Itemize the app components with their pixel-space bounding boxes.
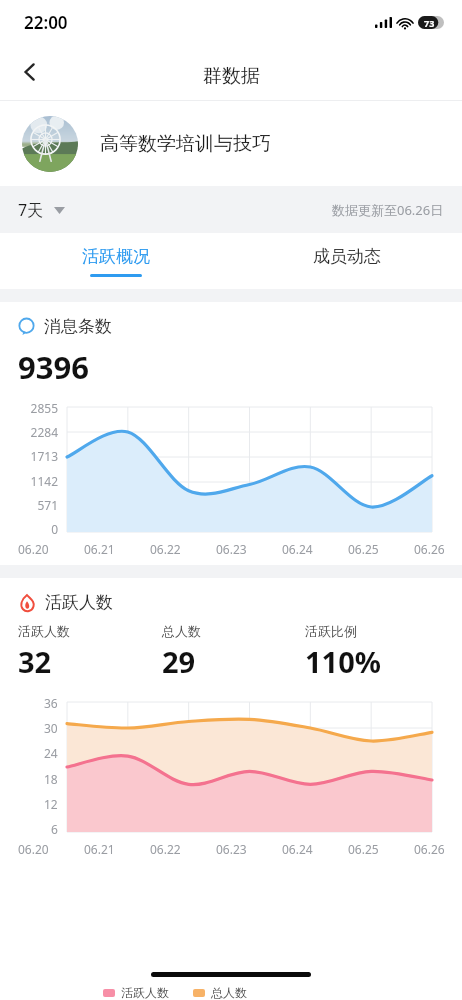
staticText: 1713 — [30, 448, 58, 464]
staticText: 0 — [51, 521, 58, 537]
staticText: 1142 — [30, 473, 58, 489]
staticText: 6 — [51, 821, 58, 837]
staticText: 群数据 — [203, 64, 260, 88]
staticText: 73 — [424, 17, 435, 29]
staticText: 36 — [44, 695, 58, 711]
staticText: 06.26 — [414, 841, 445, 857]
staticText: 06.21 — [84, 841, 115, 857]
staticText: 活跃人数 — [121, 985, 169, 1000]
staticText: 06.20 — [18, 841, 49, 857]
staticText: 7天 — [18, 199, 44, 221]
staticText: 06.22 — [150, 841, 181, 857]
staticText: 06.24 — [282, 541, 313, 557]
staticText: 成员动态 — [313, 246, 381, 267]
staticText: 06.21 — [84, 541, 115, 557]
staticText: 总人数 — [162, 623, 201, 639]
button[interactable]: 高等数学培训与技巧 — [0, 101, 462, 186]
staticText: 活跃人数 — [18, 623, 70, 639]
staticText: 06.24 — [282, 841, 313, 857]
staticText: 06.25 — [348, 841, 379, 857]
staticText: 18 — [44, 771, 58, 787]
staticText: 22:00 — [24, 11, 68, 34]
staticText: 24 — [44, 745, 58, 761]
button[interactable]: Back — [8, 50, 52, 94]
staticText: 高等数学培训与技巧 — [100, 132, 271, 156]
staticText: 571 — [37, 497, 58, 513]
button[interactable]: 活跃概况 — [0, 233, 231, 289]
staticText: 06.23 — [216, 841, 247, 857]
staticText: 06.22 — [150, 541, 181, 557]
staticText: 06.25 — [348, 541, 379, 557]
staticText: 2284 — [30, 424, 58, 440]
staticText: 110% — [305, 642, 381, 681]
staticText: 数据更新至06.26日 — [332, 201, 444, 219]
staticText: 活跃人数 — [45, 592, 113, 613]
staticText: 活跃概况 — [82, 246, 150, 267]
staticText: 活跃比例 — [305, 623, 357, 639]
staticText: 30 — [44, 720, 58, 736]
staticText: 消息条数 — [44, 316, 112, 337]
staticText: 12 — [44, 796, 58, 812]
staticText: 总人数 — [211, 985, 247, 1000]
staticText: 32 — [18, 642, 52, 681]
staticText: 06.20 — [18, 541, 49, 557]
staticText: 9396 — [18, 346, 89, 388]
staticText: 29 — [162, 642, 196, 681]
button[interactable]: 7天 — [18, 199, 65, 221]
button[interactable]: 成员动态 — [231, 233, 462, 289]
staticText: 06.23 — [216, 541, 247, 557]
staticText: 06.26 — [414, 541, 445, 557]
staticText: 2855 — [30, 400, 58, 416]
